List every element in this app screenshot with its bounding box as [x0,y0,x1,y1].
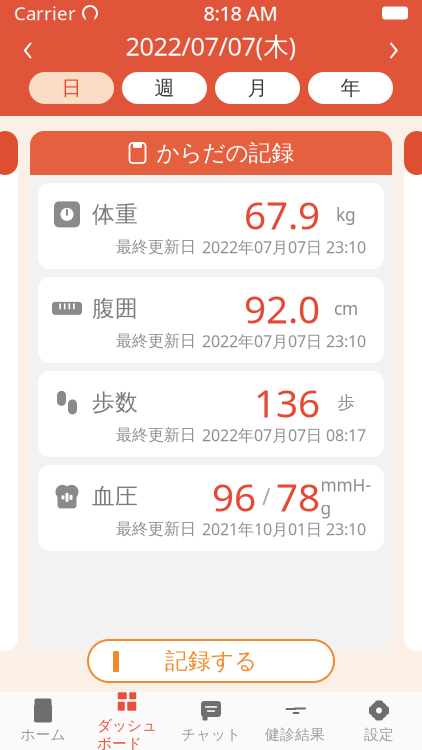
staticText: 体重 [92,200,138,228]
staticText: 2022年07月07日 08:17 [202,424,366,446]
staticText: 日 [61,76,81,100]
staticText: ホーム [20,725,65,743]
staticText: / [256,481,276,511]
staticText: cm [334,297,358,320]
staticText: 血圧 [92,482,138,510]
button[interactable]: 年 [308,72,393,104]
staticText: チャット [181,725,241,743]
staticText: ダッシュボード [97,716,157,750]
button[interactable]: 月 [215,72,300,104]
staticText: 最終更新日 [116,237,196,257]
staticText: 67.9 [244,189,320,240]
staticText: 最終更新日 [116,425,196,445]
staticText: 歩 [337,392,354,413]
button[interactable]: Previous day [0,26,56,66]
staticText: 96 [212,471,256,522]
staticText: Carrier [14,1,76,25]
staticText: 月 [247,76,267,100]
staticText: 2022年07月07日 23:10 [202,330,366,352]
button[interactable]: チャット [169,695,253,747]
staticText: 8:18 AM [203,0,277,26]
staticText: 最終更新日 [116,331,196,351]
staticText: 記録する [165,647,257,675]
staticText: 92.0 [244,283,320,334]
staticText: ‹ [22,19,33,72]
staticText: からだの記録 [156,139,294,167]
staticText: 2022/07/07(木) [125,29,296,63]
staticText: 歩数 [92,388,138,416]
button[interactable]: Next day [366,26,422,66]
staticText: › [388,19,399,72]
button[interactable]: 健診結果 [253,695,337,747]
button[interactable]: 記録する [88,640,334,682]
staticText: 年 [340,76,360,100]
button[interactable]: 設定 [337,695,421,747]
staticText: 健診結果 [265,725,325,743]
staticText: 2021年10月01日 23:10 [202,518,366,540]
staticText: 設定 [364,725,394,743]
button[interactable]: 週 [122,72,207,104]
staticText: 2022年07月07日 23:10 [202,236,366,258]
button[interactable]: 日 [29,72,114,104]
staticText: kg [336,203,356,226]
staticText: 腹囲 [92,294,138,322]
button[interactable]: ダッシュボード [85,695,169,747]
staticText: 78 [276,471,320,522]
staticText: mmHg [320,473,371,519]
button[interactable]: ホーム [1,695,85,747]
staticText: 最終更新日 [116,519,196,539]
staticText: 136 [254,377,320,428]
staticText: 週 [154,76,174,100]
